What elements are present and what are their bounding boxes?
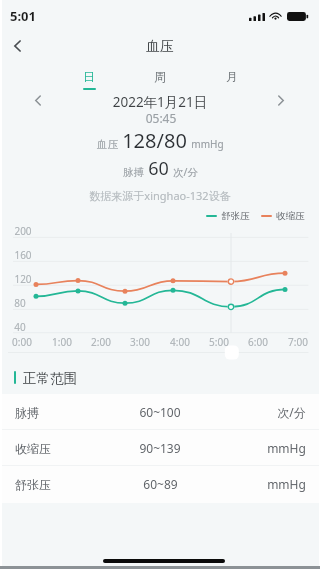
staticText: 舒张压: [15, 477, 51, 492]
staticText: 数据来源于xinghao-132设备: [60, 188, 260, 203]
staticText: 6:00: [238, 335, 278, 349]
button[interactable]: 收缩压: [0, 430, 320, 466]
staticText: 120: [14, 272, 32, 286]
button[interactable]: 月: [216, 69, 248, 90]
staticText: 80: [14, 296, 26, 310]
staticText: 160: [14, 248, 32, 262]
staticText: 2022年1月21日: [60, 93, 260, 111]
staticText: mmHg: [267, 440, 306, 456]
staticText: 200: [14, 224, 32, 238]
staticText: 60: [148, 156, 169, 181]
staticText: 60~89: [143, 476, 178, 492]
staticText: 月: [226, 69, 238, 84]
staticText: 7:00: [278, 335, 318, 349]
button[interactable]: 舒张压: [0, 466, 320, 502]
staticText: 1:00: [42, 335, 82, 349]
staticText: 次/分: [277, 404, 306, 420]
staticText: 90~139: [139, 440, 181, 456]
staticText: 3:00: [120, 335, 160, 349]
button[interactable]: Previous day: [26, 88, 50, 112]
staticText: 60~100: [139, 404, 181, 420]
staticText: 4:00: [160, 335, 200, 349]
button[interactable]: 周: [144, 69, 176, 90]
staticText: 日: [83, 69, 95, 84]
staticText: 40: [14, 320, 26, 334]
staticText: mmHg: [267, 476, 306, 492]
staticText: 次/分: [173, 165, 198, 179]
button[interactable]: 日: [73, 69, 105, 90]
staticText: mmHg: [191, 137, 224, 151]
staticText: 收缩压: [15, 441, 51, 456]
staticText: 5:01: [10, 7, 36, 25]
staticText: 收缩压: [276, 210, 305, 222]
staticText: 血压: [97, 138, 118, 151]
staticText: 周: [154, 69, 166, 84]
button[interactable]: 脉搏: [0, 394, 320, 430]
staticText: 正常范围: [23, 370, 77, 387]
staticText: 05:45: [61, 110, 261, 126]
staticText: 血压: [60, 38, 260, 56]
staticText: 0:00: [2, 335, 42, 349]
staticText: 2:00: [81, 335, 121, 349]
staticText: 5:00: [199, 335, 239, 349]
staticText: 128/80: [122, 127, 187, 154]
staticText: 舒张压: [221, 210, 250, 222]
staticText: 脉搏: [123, 166, 144, 179]
button[interactable]: Next day: [269, 88, 293, 112]
button[interactable]: Back: [3, 32, 31, 60]
staticText: 脉搏: [15, 405, 39, 420]
